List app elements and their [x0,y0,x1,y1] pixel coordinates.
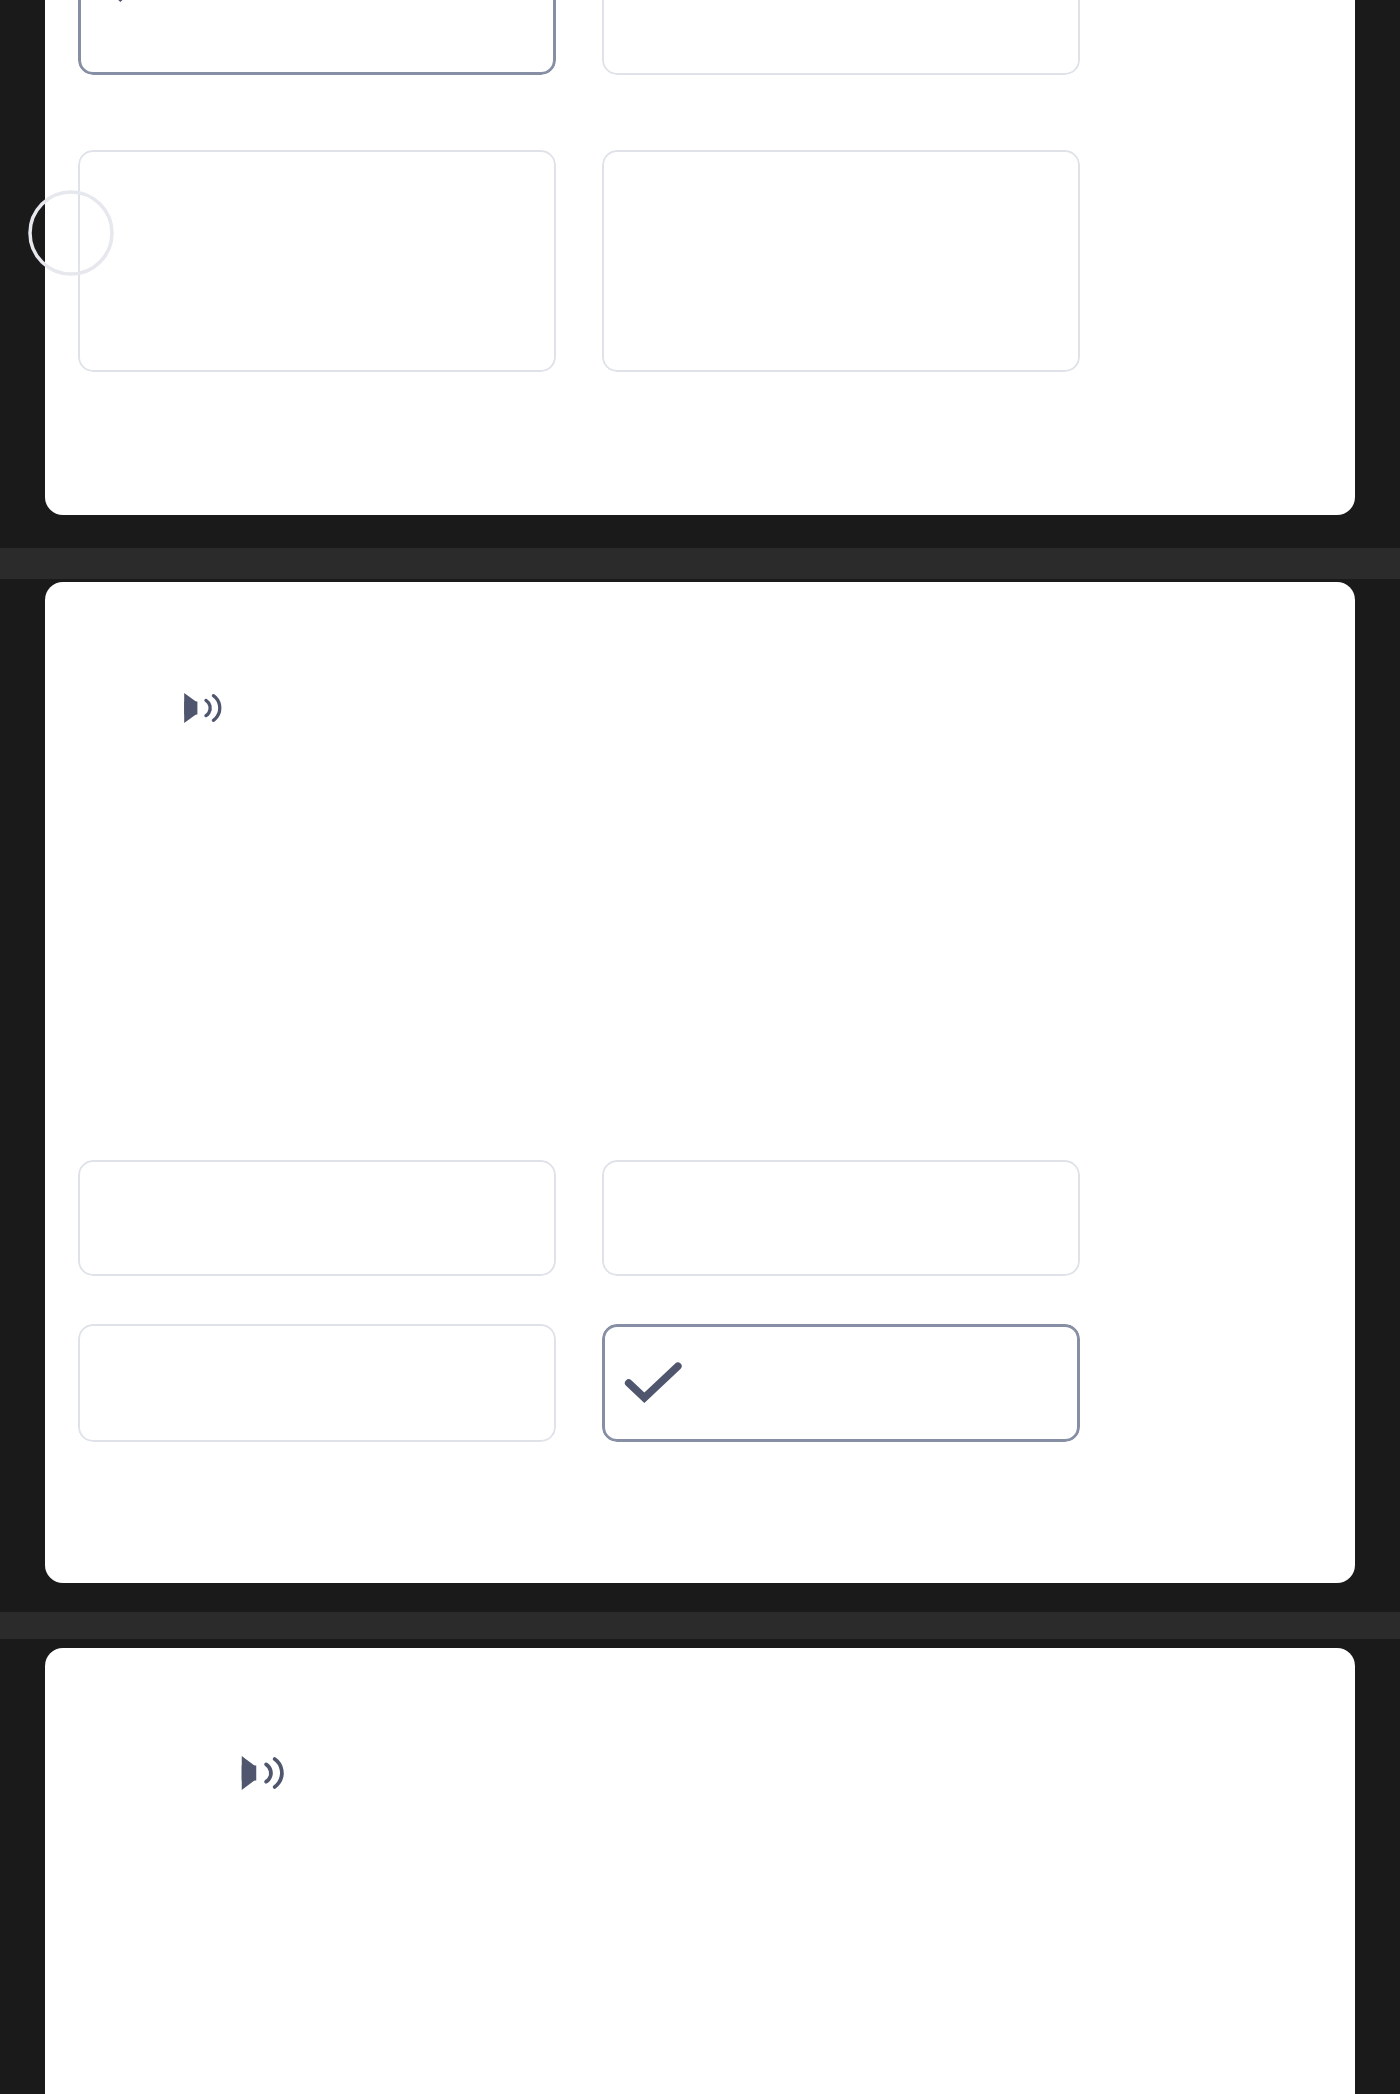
button[interactable]: Selected option [78,0,556,75]
button[interactable]: Option [602,0,1080,75]
button[interactable]: Option [78,150,556,372]
button[interactable]: Play audio [227,1744,289,1802]
button[interactable]: Option [78,1324,556,1442]
button[interactable]: Selected option [602,1324,1080,1442]
button[interactable]: Option [602,1160,1080,1276]
button[interactable]: Play audio [171,682,227,734]
button[interactable]: Option [78,1160,556,1276]
button[interactable]: Option [602,150,1080,372]
